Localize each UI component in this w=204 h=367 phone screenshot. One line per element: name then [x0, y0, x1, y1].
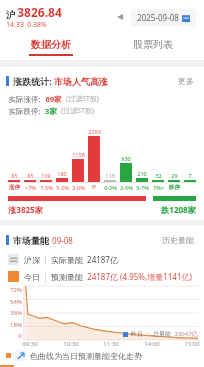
staticText: 涨停 — [9, 184, 20, 191]
staticText: 跌停 — [169, 184, 180, 191]
staticText: 今日 — [24, 272, 40, 282]
staticText: 36% — [10, 309, 22, 317]
staticText: 2293 — [88, 128, 101, 135]
staticText: 预测量能 — [51, 272, 83, 282]
staticText: 23047亿 — [174, 330, 198, 338]
staticText: >7% — [25, 184, 36, 191]
staticText: 实际量能 — [51, 255, 83, 265]
staticText: 1158 — [72, 151, 85, 158]
staticText: 10:30 — [63, 340, 79, 348]
staticText: (过滤ST股) — [66, 94, 99, 104]
staticText: 市场人气高涨 — [54, 76, 108, 87]
staticText: 109 — [41, 172, 51, 179]
staticText: 3家 — [45, 106, 57, 116]
staticText: 7%< — [153, 184, 164, 191]
staticText: 更多 — [178, 76, 194, 86]
staticText: 数据分析 — [31, 38, 71, 51]
staticText: 市场量能 — [13, 235, 49, 246]
staticText: 180 — [57, 170, 67, 177]
staticText: 股票列表 — [133, 38, 173, 51]
staticText: 210 — [137, 170, 147, 177]
staticText: 跌1208家 — [161, 204, 196, 215]
staticText: 0.38% — [27, 20, 47, 30]
staticText: 24187亿 (4.95%,增量1141亿) — [87, 271, 192, 282]
staticText: 实际涨停: — [8, 94, 41, 104]
staticText: 14:00 — [144, 340, 160, 348]
button[interactable]: 历史量能 — [160, 233, 196, 247]
staticText: 69家 — [45, 94, 62, 104]
staticText: | — [43, 254, 48, 265]
button[interactable]: Previous day — [113, 10, 127, 24]
staticText: 3826.84 — [17, 4, 62, 20]
staticText: 0 — [18, 332, 22, 340]
staticText: 24187亿 — [87, 254, 118, 265]
staticText: 14.33 — [6, 20, 24, 30]
staticText: 2-0% — [72, 184, 85, 191]
staticText: 涨跌统计: — [13, 75, 52, 87]
button[interactable]: 股票列表 — [102, 34, 204, 60]
button[interactable]: 2025-09-08 — [131, 9, 196, 26]
staticText: 32 — [155, 172, 162, 179]
staticText: 沪深 — [24, 255, 40, 265]
staticText: 11:30 — [103, 340, 119, 348]
staticText: 涨3825家 — [8, 204, 43, 215]
staticText: 5-7% — [136, 184, 149, 191]
staticText: 2-5% — [120, 184, 133, 191]
staticText: 7-5% — [40, 184, 53, 191]
staticText: 昨日 — [131, 330, 143, 338]
staticText: | — [146, 330, 150, 338]
staticText: (过滤ST股) — [61, 106, 94, 116]
staticText: 85 — [11, 172, 18, 179]
staticText: 实际跌停: — [8, 106, 41, 116]
staticText: 15:00 — [184, 340, 200, 348]
staticText: 历史量能 — [162, 235, 194, 245]
staticText: 85 — [27, 172, 34, 179]
staticText: 930 — [121, 155, 131, 162]
staticText: 7 — [188, 172, 192, 179]
staticText: 29 — [171, 172, 178, 179]
staticText: 5-2% — [56, 184, 69, 191]
button[interactable]: Info — [15, 350, 26, 361]
staticText: 09:30 — [22, 340, 38, 348]
button[interactable]: 数据分析 — [0, 34, 102, 60]
staticText: 总量能 — [153, 330, 171, 338]
staticText: 54% — [10, 298, 22, 306]
staticText: 0-2% — [104, 184, 117, 191]
staticText: 113 — [105, 172, 115, 179]
staticText: 2025-09-08 — [137, 12, 179, 23]
staticText: | — [43, 271, 48, 282]
staticText: 色曲线为当日预测量能变化走势 — [30, 351, 142, 361]
staticText: 72% — [10, 286, 22, 294]
staticText: 沪 — [6, 9, 15, 20]
staticText: 18% — [10, 321, 22, 329]
staticText: 09-08 — [52, 235, 73, 246]
button[interactable]: 更多 — [176, 74, 196, 88]
staticText: 平 — [91, 184, 97, 191]
